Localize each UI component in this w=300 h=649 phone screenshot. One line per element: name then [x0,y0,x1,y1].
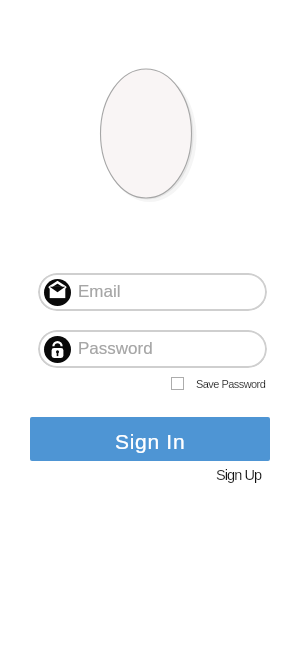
staticText: Save Password [196,378,266,390]
staticText: Sign Up [216,467,262,483]
button[interactable]: Sign Up [216,467,262,483]
staticText: Email [78,282,121,301]
button[interactable]: Sign In [30,417,270,461]
button[interactable]: Password [38,330,267,368]
button[interactable]: Email [38,273,267,311]
staticText: Password [78,339,153,358]
button[interactable]: Save Password [171,377,266,390]
staticText: Sign In [115,430,186,453]
